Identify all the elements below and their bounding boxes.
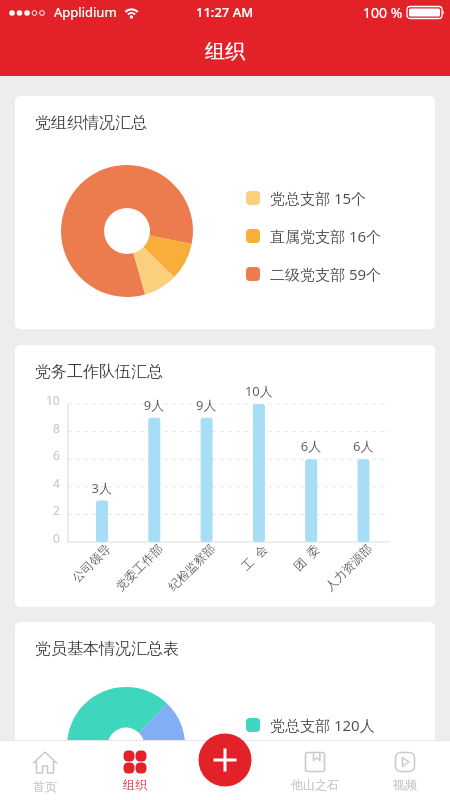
staticText: 直属党支部 16个	[270, 226, 382, 246]
button[interactable]: 视频	[360, 741, 450, 800]
staticText: 首页	[33, 779, 57, 794]
staticText: 二级党支部 59个	[270, 264, 382, 284]
staticText: 视频	[393, 777, 417, 792]
staticText: 党总支部 15个	[270, 188, 367, 208]
button[interactable]	[195, 730, 255, 790]
staticText: 组织	[205, 39, 245, 64]
staticText: 党员基本情况汇总表	[35, 639, 179, 659]
button[interactable]: 组织	[90, 741, 180, 800]
staticText: 100 %	[363, 3, 403, 22]
staticText: 党务工作队伍汇总	[35, 362, 163, 382]
staticText: 他山之石	[291, 777, 339, 792]
button[interactable]: 他山之石	[270, 741, 360, 800]
staticText: 11:27 AM	[196, 3, 254, 21]
staticText: Applidium	[54, 3, 117, 21]
staticText: 党总支部 120人	[270, 715, 375, 735]
staticText: 组织	[123, 777, 147, 792]
staticText: 党组织情况汇总	[35, 113, 147, 133]
button[interactable]: 首页	[0, 741, 90, 800]
